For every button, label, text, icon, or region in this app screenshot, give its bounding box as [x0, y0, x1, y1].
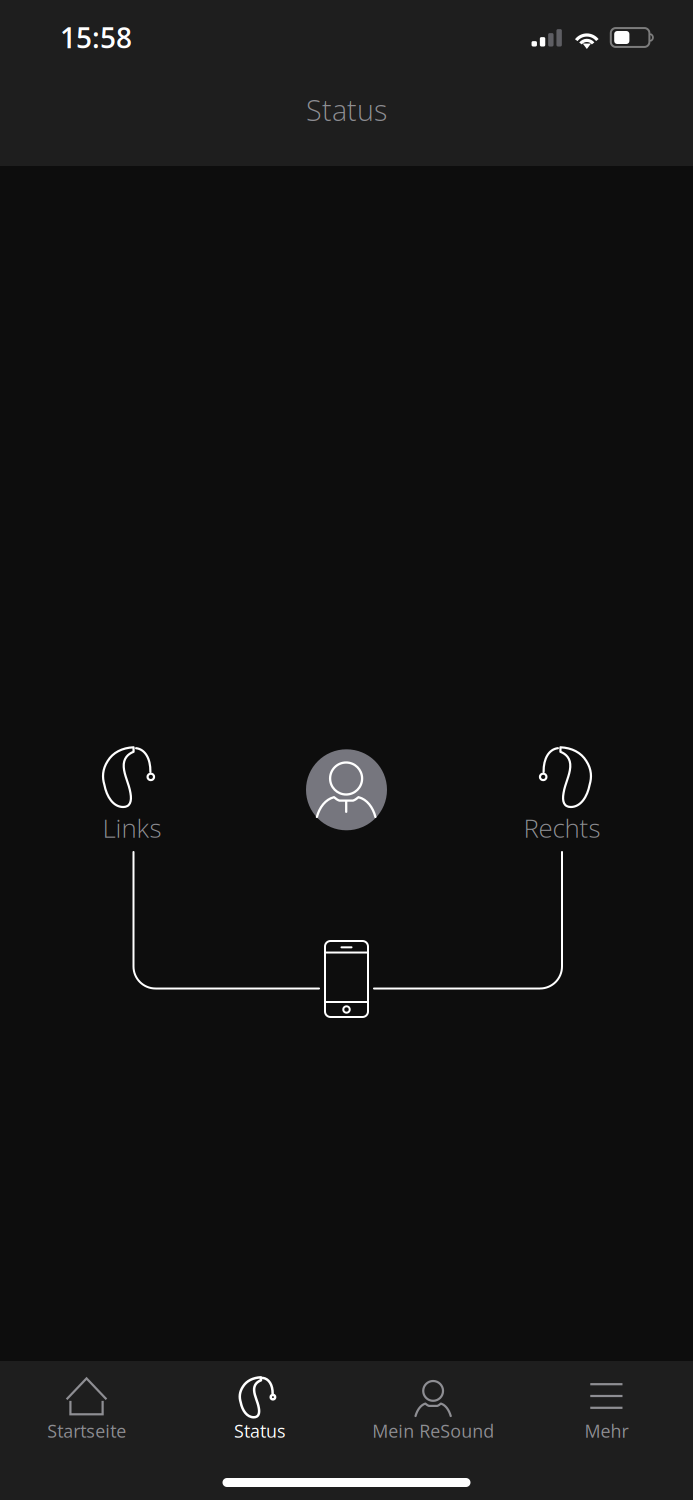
staticText: Mein ReSound	[372, 1418, 494, 1443]
staticText: Startseite	[47, 1418, 126, 1443]
button[interactable]: Status	[173, 1361, 346, 1440]
button[interactable]: Rechts	[477, 746, 647, 856]
staticText: Status	[306, 90, 387, 129]
staticText: Mehr	[584, 1418, 628, 1443]
button[interactable]: Status	[306, 97, 387, 123]
button[interactable]: Startseite	[0, 1361, 173, 1440]
staticText: 15:58	[60, 18, 132, 56]
button[interactable]: Links	[47, 746, 217, 856]
button[interactable]: Profile	[306, 749, 387, 830]
button[interactable]: Mein ReSound	[346, 1361, 520, 1440]
staticText: Links	[102, 810, 161, 845]
staticText: Status	[234, 1418, 286, 1443]
staticText: Rechts	[523, 810, 600, 845]
button[interactable]: Mehr	[520, 1361, 693, 1440]
